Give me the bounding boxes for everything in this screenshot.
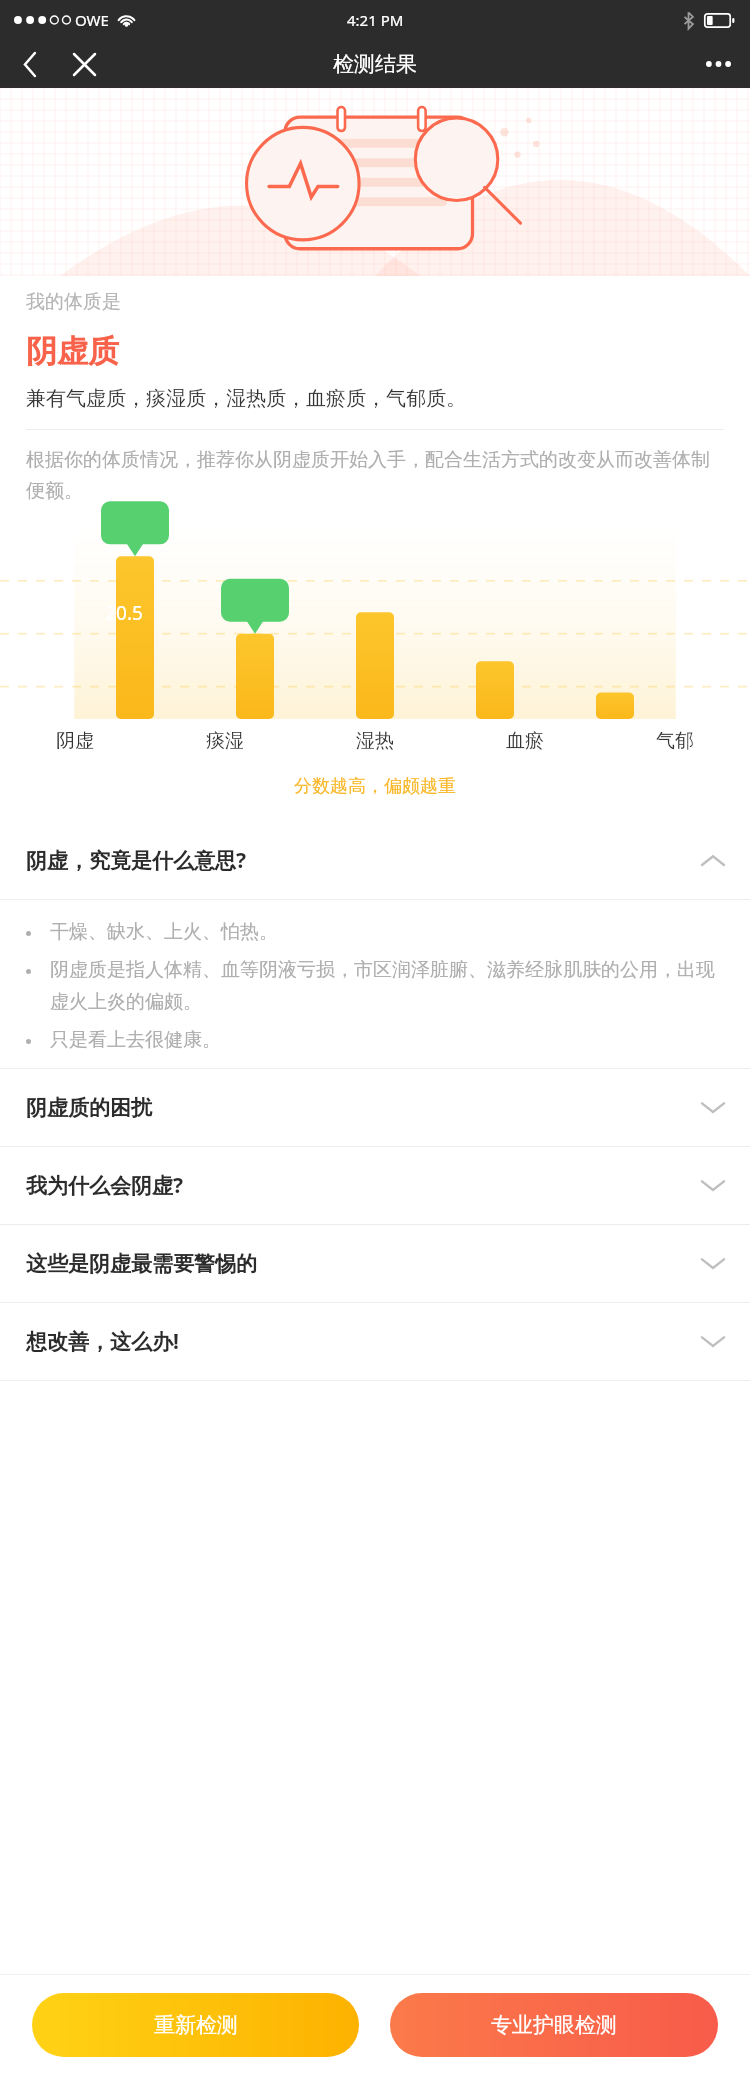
- staticText: 痰湿: [206, 729, 244, 753]
- staticText: 这些是阴虚最需要警惕的: [26, 1251, 702, 1277]
- staticText: 阴虚质的困扰: [26, 1095, 702, 1121]
- button[interactable]: 我为什么会阴虚?: [0, 1147, 750, 1224]
- staticText: 检测结果: [333, 51, 417, 77]
- staticText: 专业护眼检测: [491, 2012, 617, 2038]
- button[interactable]: 重新检测: [32, 1993, 359, 2057]
- button[interactable]: 阴虚，究竟是什么意思?: [0, 821, 750, 899]
- staticText: 只是看上去很健康。: [50, 1028, 720, 1052]
- staticText: 根据你的体质情况，推荐你从阴虚质开始入手，配合生活方式的改变从而改善体制便额。: [26, 448, 724, 503]
- staticText: 干燥、缺水、上火、怕热。: [50, 920, 720, 944]
- staticText: OWE: [75, 10, 109, 30]
- staticText: 血瘀: [506, 729, 544, 753]
- staticText: 分数越高，偏颇越重: [0, 775, 750, 798]
- staticText: 阴虚: [56, 729, 94, 753]
- button[interactable]: More options: [694, 40, 742, 88]
- button[interactable]: 阴虚质的困扰: [0, 1069, 750, 1146]
- staticText: 兼有气虚质，痰湿质，湿热质，血瘀质，气郁质。: [26, 386, 466, 411]
- staticText: 我为什么会阴虚?: [26, 1171, 702, 1200]
- staticText: 气郁: [656, 729, 694, 753]
- staticText: 阴虚质是指人体精、血等阴液亏损，市区润泽脏腑、滋养经脉肌肤的公用，出现虚火上炎的…: [50, 958, 720, 1014]
- staticText: 我的体质是: [26, 290, 121, 314]
- staticText: 20.5: [105, 600, 143, 626]
- button[interactable]: 想改善，这么办!: [0, 1303, 750, 1380]
- button[interactable]: Back: [6, 40, 54, 88]
- staticText: 重新检测: [154, 2012, 238, 2038]
- staticText: 想改善，这么办!: [26, 1327, 702, 1356]
- staticText: 湿热: [356, 729, 394, 753]
- button[interactable]: 专业护眼检测: [390, 1993, 718, 2057]
- staticText: 阴虚质: [26, 332, 119, 371]
- staticText: 阴虚，究竟是什么意思?: [26, 846, 702, 875]
- button[interactable]: 这些是阴虚最需要警惕的: [0, 1225, 750, 1302]
- button[interactable]: Close: [60, 40, 108, 88]
- staticText: 4:21 PM: [347, 10, 404, 30]
